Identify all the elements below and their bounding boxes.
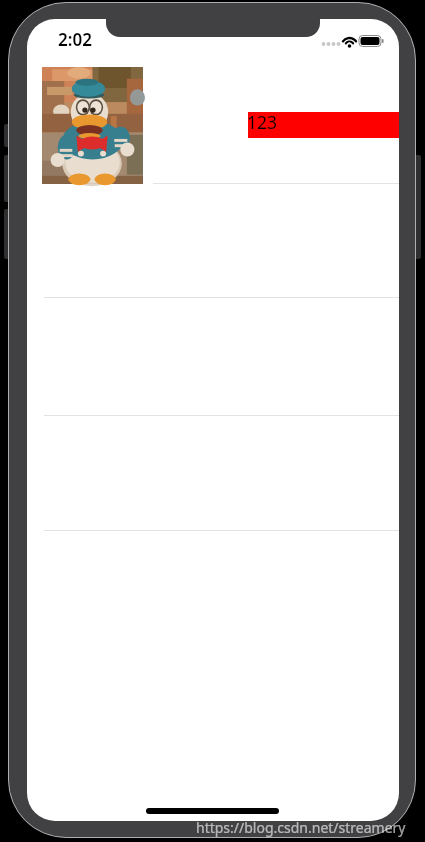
button[interactable]: 123 <box>248 112 399 138</box>
staticText: 2:02 <box>58 28 92 51</box>
staticText: 123 <box>247 110 278 134</box>
button[interactable] <box>27 67 399 183</box>
staticText: https://blog.csdn.net/streamery <box>196 818 406 837</box>
button[interactable] <box>27 184 399 297</box>
